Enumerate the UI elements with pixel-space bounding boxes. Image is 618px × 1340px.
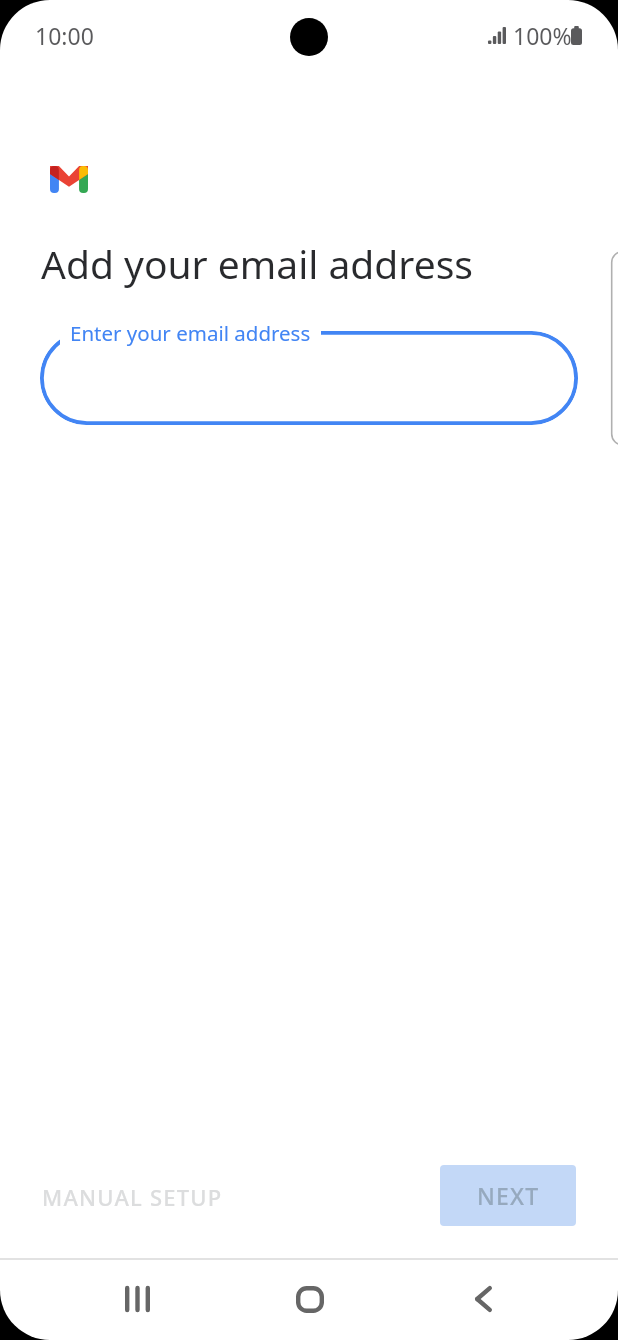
staticText: 10:00: [35, 20, 94, 51]
button[interactable]: Home: [263, 1258, 357, 1340]
staticText: Add your email address: [41, 237, 474, 290]
button[interactable]: NEXT: [440, 1165, 576, 1226]
button[interactable]: Enter your email address: [40, 331, 578, 425]
button[interactable]: MANUAL SETUP: [26, 1172, 239, 1222]
staticText: 100%: [513, 20, 572, 51]
staticText: NEXT: [477, 1180, 540, 1211]
staticText: MANUAL SETUP: [42, 1182, 223, 1212]
button[interactable]: Back: [436, 1258, 530, 1340]
staticText: Enter your email address: [70, 319, 311, 347]
button[interactable]: Recent apps: [90, 1258, 184, 1340]
